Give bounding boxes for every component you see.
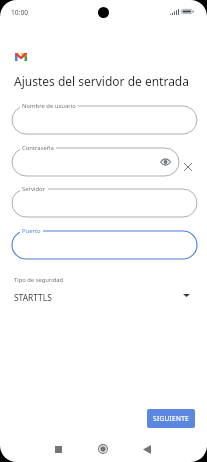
button[interactable]: Nombre de usuario — [12, 106, 197, 134]
staticText: Tipo de seguridad — [14, 276, 64, 284]
button[interactable]: Contraseña — [12, 148, 179, 176]
button[interactable]: Atrás — [137, 439, 157, 459]
button[interactable]: Mostrar contraseña — [158, 155, 172, 169]
button[interactable]: Servidor — [12, 189, 197, 217]
staticText: Ajustes del servidor de entrada — [14, 73, 189, 89]
button[interactable]: Recientes — [48, 439, 68, 459]
button[interactable]: SIGUIENTE — [147, 409, 195, 428]
button[interactable]: Inicio — [93, 439, 113, 459]
button[interactable]: Tipo de seguridad — [0, 275, 207, 308]
staticText: 10:00 — [11, 8, 29, 17]
staticText: Nombre de usuario — [22, 102, 76, 110]
button[interactable]: Borrar — [181, 160, 195, 174]
staticText: STARTTLS — [14, 292, 52, 303]
staticText: Servidor — [22, 185, 46, 193]
staticText: Contraseña — [22, 144, 54, 152]
staticText: SIGUIENTE — [153, 414, 189, 423]
button[interactable]: Puerto — [12, 231, 197, 259]
staticText: Puerto — [22, 227, 41, 235]
